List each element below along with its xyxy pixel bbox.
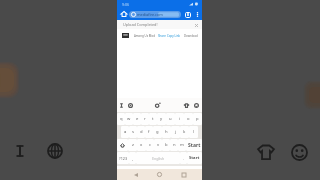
staticText: 8 — [187, 12, 189, 17]
button[interactable]: q — [117, 113, 125, 125]
button[interactable]: r — [141, 113, 149, 125]
button[interactable]: b — [162, 139, 170, 151]
staticText: j — [175, 129, 177, 135]
button[interactable]: Home — [119, 8, 129, 20]
staticText: n — [173, 142, 176, 148]
staticText: Among Us Mod — [134, 34, 156, 38]
button[interactable]: English — [136, 152, 180, 164]
staticText: e — [136, 116, 139, 122]
button[interactable]: Recent apps — [178, 169, 189, 180]
staticText: mediafire.com — [137, 12, 163, 17]
button[interactable]: . — [180, 152, 187, 164]
button[interactable]: s — [129, 126, 137, 138]
staticText: c — [149, 142, 152, 148]
button[interactable]: Clipboard — [117, 98, 126, 112]
button[interactable]: Settings — [126, 98, 135, 112]
button[interactable]: v — [154, 139, 162, 151]
staticText: y — [160, 116, 163, 122]
button[interactable]: z — [128, 139, 137, 151]
button[interactable]: Stickers — [257, 143, 275, 161]
button[interactable]: Copy Link — [167, 34, 181, 38]
button[interactable]: Emoji — [291, 144, 308, 161]
button[interactable]: g — [153, 126, 162, 138]
button[interactable]: e — [133, 113, 141, 125]
staticText: . — [183, 156, 185, 161]
button[interactable]: Close — [193, 22, 199, 28]
button[interactable]: y — [157, 113, 166, 125]
staticText: w — [127, 116, 131, 122]
button[interactable]: x — [137, 139, 146, 151]
staticText: Upload Completed! — [123, 22, 158, 27]
button[interactable]: Stickers — [181, 98, 191, 112]
button[interactable]: More options — [193, 10, 201, 18]
button[interactable]: Home — [154, 169, 165, 180]
button[interactable]: Start — [187, 152, 202, 164]
button[interactable]: Start — [186, 139, 202, 151]
button[interactable]: d — [137, 126, 145, 138]
staticText: h — [165, 129, 168, 135]
staticText: p — [196, 116, 199, 122]
button[interactable]: Share — [158, 34, 166, 38]
staticText: f — [148, 129, 150, 135]
staticText: English — [152, 156, 165, 161]
button[interactable]: Language — [47, 143, 63, 159]
staticText: g — [156, 129, 159, 135]
button[interactable]: n — [170, 139, 178, 151]
button[interactable]: GIF — [152, 98, 164, 112]
button[interactable]: Text cursor — [13, 144, 27, 158]
button[interactable]: mediafire.com — [129, 11, 181, 18]
staticText: t — [152, 116, 154, 122]
staticText: q — [120, 116, 123, 122]
button[interactable]: i — [175, 113, 184, 125]
staticText: r — [144, 116, 146, 122]
staticText: u — [169, 116, 172, 122]
staticText: k — [183, 129, 186, 135]
button[interactable]: ?123 — [117, 152, 129, 164]
button[interactable]: u — [166, 113, 175, 125]
button[interactable]: Shift — [117, 139, 128, 151]
staticText: m — [180, 142, 184, 148]
button[interactable]: Emoji — [191, 98, 202, 112]
button[interactable]: c — [146, 139, 154, 151]
button[interactable]: k — [180, 126, 189, 138]
staticText: Start — [188, 142, 201, 149]
button[interactable]: Back — [130, 169, 141, 180]
button[interactable]: p — [193, 113, 202, 125]
button[interactable]: l — [189, 126, 198, 138]
staticText: v — [157, 142, 160, 148]
staticText: x — [140, 142, 143, 148]
button[interactable]: m — [178, 139, 186, 151]
staticText: s — [132, 129, 135, 135]
staticText: Start — [189, 155, 200, 161]
staticText: a — [124, 129, 127, 135]
button[interactable]: a — [121, 126, 129, 138]
button[interactable]: Download — [184, 34, 198, 38]
staticText: o — [187, 116, 190, 122]
staticText: z — [132, 142, 134, 148]
button[interactable]: , — [129, 152, 136, 164]
button[interactable]: j — [171, 126, 180, 138]
button[interactable]: t — [149, 113, 157, 125]
staticText: , — [132, 156, 134, 161]
button[interactable]: o — [184, 113, 193, 125]
staticText: d — [140, 129, 143, 135]
button[interactable]: Among Us Mod — [117, 29, 202, 42]
button[interactable]: f — [145, 126, 153, 138]
staticText: i — [179, 116, 181, 122]
button[interactable]: h — [162, 126, 171, 138]
staticText: ?123 — [119, 156, 128, 161]
staticText: b — [165, 142, 168, 148]
staticText: l — [193, 129, 195, 135]
button[interactable]: Tabs — [184, 11, 191, 18]
button[interactable]: w — [125, 113, 133, 125]
button[interactable]: Upload Completed! — [117, 20, 202, 29]
staticText: 9:06 — [122, 2, 130, 7]
